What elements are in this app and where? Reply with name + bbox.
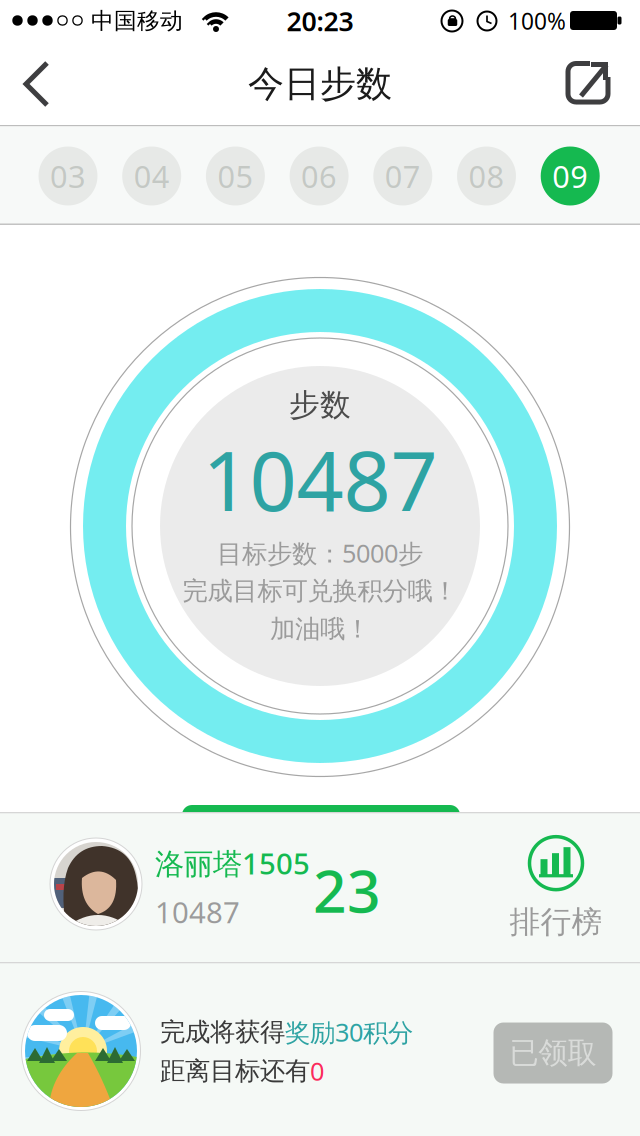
staticText: 中国移动 [91, 7, 183, 35]
button[interactable]: 已领取 [493, 1022, 612, 1083]
staticText: 目标步数：5000步 [217, 536, 423, 570]
staticText: 100% [508, 6, 566, 36]
staticText: 05 [217, 156, 253, 196]
staticText: 07 [385, 156, 421, 196]
staticText: 完成目标可兑换积分哦！ [182, 575, 457, 606]
staticText: 洛丽塔1505 [155, 843, 310, 882]
staticText: 已领取 [509, 1035, 596, 1071]
staticText: 06 [301, 156, 337, 196]
staticText: 今日步数 [248, 62, 392, 106]
staticText: 08 [468, 156, 504, 196]
staticText: 奖励30积分 [285, 1015, 413, 1049]
staticText: 20:23 [286, 3, 353, 39]
button[interactable]: 日期 05 [206, 146, 265, 205]
button[interactable]: Back [8, 49, 64, 119]
button[interactable]: 日期 08 [457, 146, 516, 205]
button[interactable]: 日期 03 [38, 146, 97, 205]
staticText: 步数 [289, 386, 351, 424]
button[interactable]: 排行榜 [501, 838, 611, 938]
button[interactable]: 日期 09 [541, 146, 600, 205]
staticText: 09 [552, 156, 588, 196]
button[interactable]: 日期 04 [122, 146, 181, 205]
button[interactable]: 日期 06 [290, 146, 349, 205]
staticText: 23 [313, 851, 381, 929]
staticText: 10487 [155, 892, 240, 931]
staticText: 04 [134, 156, 170, 196]
button[interactable]: 兑换积分 [182, 805, 460, 841]
staticText: 排行榜 [509, 903, 602, 941]
staticText: 10487 [202, 424, 437, 534]
staticText: 距离目标还有 [160, 1055, 310, 1086]
button[interactable]: 日期 07 [373, 146, 432, 205]
staticText: 0 [310, 1054, 324, 1088]
staticText: 加油哦！ [270, 613, 370, 644]
staticText: 03 [50, 156, 86, 196]
button[interactable]: Share [560, 55, 616, 111]
staticText: 完成将获得 [160, 1016, 285, 1047]
